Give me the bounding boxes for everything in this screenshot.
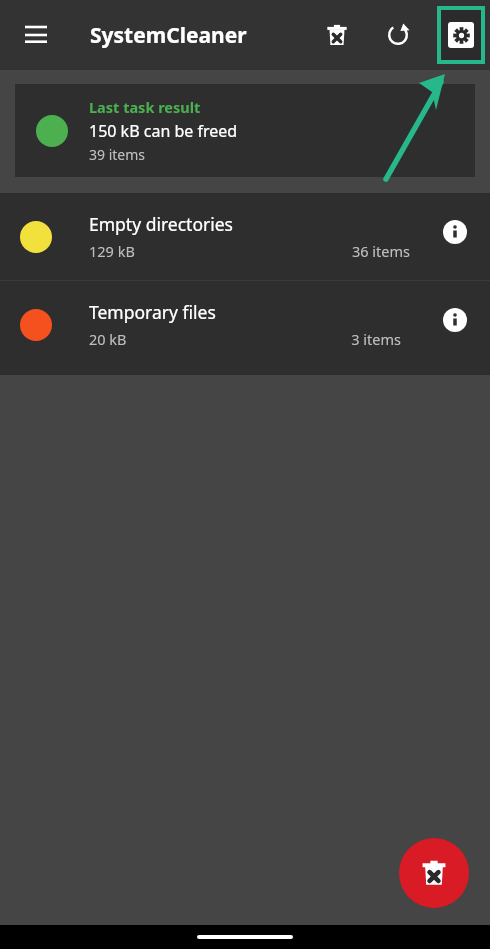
staticText: 150 kB can be freed bbox=[89, 120, 238, 142]
button[interactable]: Open navigation menu bbox=[12, 11, 60, 59]
button[interactable]: Temporary files bbox=[0, 281, 490, 368]
button[interactable]: Delete bbox=[313, 11, 361, 59]
button[interactable]: Details about Empty directories bbox=[436, 213, 474, 251]
staticText: Temporary files bbox=[89, 300, 216, 324]
staticText: Last task result bbox=[89, 97, 201, 117]
staticText: 129 kB bbox=[89, 241, 135, 261]
staticText: Empty directories bbox=[89, 212, 233, 236]
button[interactable]: Last task result bbox=[15, 84, 475, 177]
staticText: 20 kB bbox=[89, 329, 127, 349]
button[interactable]: Refresh bbox=[374, 11, 422, 59]
button[interactable]: Settings bbox=[441, 10, 481, 60]
staticText: 36 items bbox=[351, 241, 410, 261]
button[interactable]: Delete all bbox=[399, 838, 469, 908]
staticText: 39 items bbox=[89, 145, 146, 164]
staticText: 3 items bbox=[351, 329, 401, 349]
button[interactable]: Details about Temporary files bbox=[436, 301, 474, 339]
button[interactable]: Empty directories bbox=[0, 193, 490, 280]
staticText: SystemCleaner bbox=[90, 21, 247, 50]
